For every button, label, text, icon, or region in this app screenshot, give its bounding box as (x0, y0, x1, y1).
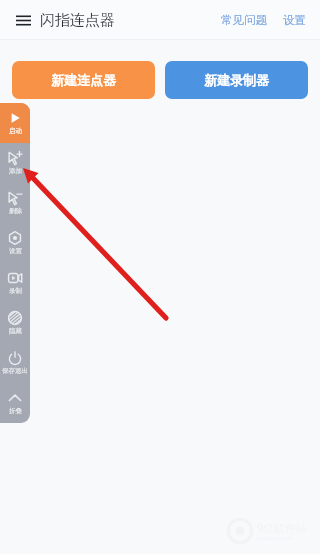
staticText: 保存退出 (2, 367, 28, 375)
staticText: 隐藏 (9, 327, 22, 335)
button[interactable]: 设置 (0, 223, 30, 263)
button[interactable]: 常见问题 (217, 7, 271, 33)
staticText: 新建连点器 (51, 72, 116, 88)
button[interactable]: 删除 (0, 183, 30, 223)
staticText: 新建录制器 (204, 72, 269, 88)
staticText: 设置 (9, 247, 22, 255)
button[interactable]: 新建录制器 (165, 61, 308, 99)
button[interactable]: 保存退出 (0, 343, 30, 383)
staticText: 启动 (9, 127, 22, 135)
staticText: 添加 (9, 167, 22, 175)
staticText: 录制 (9, 287, 22, 295)
staticText: 折叠 (9, 407, 22, 415)
staticText: 闪指连点器 (40, 11, 115, 30)
button[interactable]: 录制 (0, 263, 30, 303)
staticText: 常见问题 (221, 13, 267, 27)
button[interactable]: 设置 (279, 7, 310, 33)
button[interactable]: 隐藏 (0, 303, 30, 343)
staticText: 设置 (283, 13, 306, 27)
button[interactable]: 新建连点器 (12, 61, 155, 99)
button[interactable]: Menu (8, 5, 38, 35)
staticText: 删除 (9, 207, 22, 215)
button[interactable]: 折叠 (0, 383, 30, 423)
button[interactable]: 添加 (0, 143, 30, 183)
button[interactable]: 启动 (0, 103, 30, 143)
